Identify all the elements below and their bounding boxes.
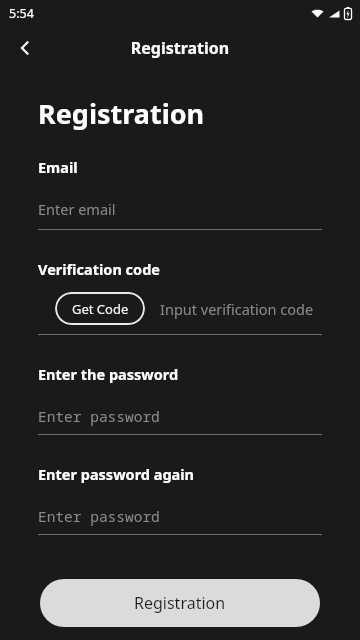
staticText: Email xyxy=(38,157,78,177)
button[interactable]: Registration xyxy=(40,579,320,627)
staticText: Enter email xyxy=(38,199,116,219)
staticText: Registration xyxy=(0,37,360,59)
staticText: Enter password xyxy=(38,406,160,426)
staticText: Enter the password xyxy=(38,364,179,384)
staticText: 5:54 xyxy=(9,5,34,22)
staticText: Input verification code xyxy=(160,299,314,319)
staticText: Verification code xyxy=(38,259,160,279)
button[interactable]: Get Code xyxy=(55,292,145,325)
staticText: Get Code xyxy=(72,300,129,318)
staticText: Registration xyxy=(38,95,205,132)
button[interactable]: Back xyxy=(10,33,40,63)
staticText: Enter password again xyxy=(38,464,195,484)
staticText: Enter password xyxy=(38,506,160,526)
staticText: Registration xyxy=(134,592,226,614)
